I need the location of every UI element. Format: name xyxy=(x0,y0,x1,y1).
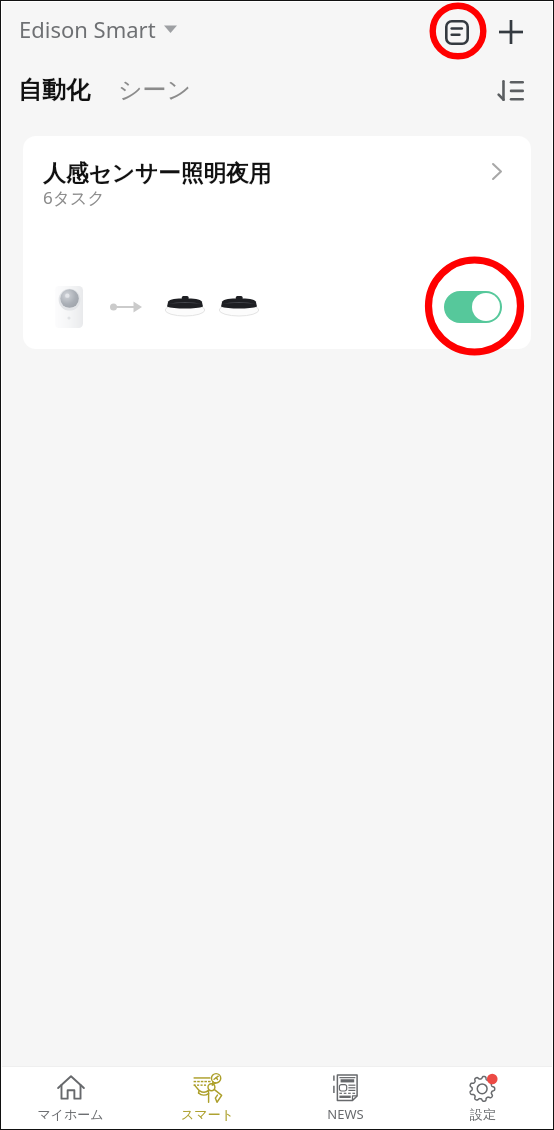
staticText: スマート xyxy=(181,1106,234,1122)
button[interactable]: マイホーム xyxy=(2,1067,139,1128)
button[interactable]: スマート xyxy=(139,1067,276,1128)
button[interactable]: 自動化 xyxy=(18,67,90,113)
button[interactable]: Add xyxy=(491,12,531,52)
button[interactable]: シーン xyxy=(118,67,192,113)
button[interactable]: Sort xyxy=(490,70,530,110)
button[interactable]: Log xyxy=(435,10,479,54)
button[interactable]: NEWS xyxy=(276,1067,414,1128)
button[interactable]: 設定 xyxy=(414,1067,552,1128)
staticText: NEWS xyxy=(327,1105,364,1123)
staticText: 6タスク xyxy=(43,186,105,209)
button[interactable]: 人感センサー照明夜用 xyxy=(23,136,531,349)
staticText: 設定 xyxy=(470,1106,496,1122)
staticText: シーン xyxy=(118,75,192,105)
button[interactable]: Toggle automation xyxy=(444,291,502,323)
staticText: マイホーム xyxy=(37,1106,104,1122)
button[interactable]: Edison Smart xyxy=(19,11,177,53)
staticText: Edison Smart xyxy=(19,14,156,44)
staticText: 人感センサー照明夜用 xyxy=(43,159,272,188)
staticText: 自動化 xyxy=(18,75,90,105)
